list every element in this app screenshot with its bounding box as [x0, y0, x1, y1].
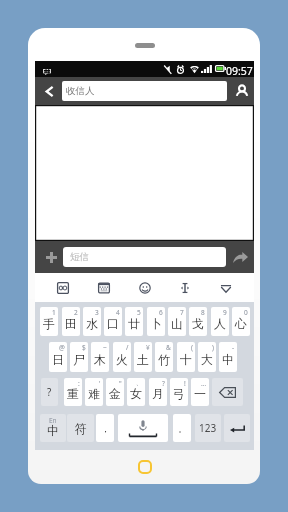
button[interactable]: :	[64, 378, 82, 406]
staticText: 8	[201, 308, 205, 317]
button[interactable]: @	[49, 342, 67, 372]
button[interactable]: …	[191, 378, 209, 406]
staticText: 2	[74, 308, 78, 317]
staticText: &	[166, 343, 171, 352]
button[interactable]: 6	[147, 307, 165, 336]
button[interactable]: 4	[104, 307, 122, 336]
staticText: 4	[116, 308, 120, 317]
button[interactable]: Keyboard layout	[90, 273, 118, 302]
staticText: 弓	[173, 386, 185, 401]
button[interactable]: 符	[67, 414, 94, 442]
button[interactable]: Send	[227, 241, 254, 273]
staticText: 水	[86, 316, 98, 331]
staticText: 收信人	[66, 85, 95, 97]
button[interactable]: -	[219, 342, 237, 372]
staticText: 重	[67, 386, 79, 401]
staticText: 卜	[150, 316, 162, 331]
staticText: 日	[52, 352, 64, 367]
staticText: 难	[88, 386, 100, 401]
button[interactable]: 0	[232, 307, 250, 336]
button[interactable]: En	[40, 414, 66, 442]
button[interactable]: 短信	[63, 247, 226, 267]
button[interactable]: ，	[96, 414, 114, 442]
button[interactable]: backspace	[212, 378, 243, 406]
staticText: 9	[223, 308, 227, 317]
staticText: 5	[137, 308, 141, 317]
staticText: 竹	[158, 352, 170, 367]
button[interactable]: Emoji	[131, 273, 159, 302]
button[interactable]: 1	[40, 307, 58, 336]
staticText: "	[119, 379, 122, 388]
staticText: 09:57	[226, 64, 253, 78]
staticText: ，	[101, 423, 110, 434]
staticText: 戈	[192, 316, 204, 331]
button[interactable]: 123	[195, 414, 221, 442]
button[interactable]: 。	[173, 414, 191, 442]
button[interactable]: Choose contact	[229, 77, 254, 105]
button[interactable]: )	[198, 342, 216, 372]
staticText: En	[49, 416, 57, 425]
button[interactable]: (	[177, 342, 195, 372]
button[interactable]: ?	[41, 378, 58, 406]
staticText: 十	[180, 352, 192, 367]
button[interactable]: 9	[211, 307, 229, 336]
staticText: ?	[47, 385, 52, 399]
staticText: 女	[130, 386, 142, 401]
staticText: 手	[43, 316, 55, 331]
staticText: 土	[137, 352, 149, 367]
button[interactable]: ?	[149, 378, 167, 406]
staticText: 中	[47, 423, 59, 438]
staticText: 123	[199, 421, 217, 435]
button[interactable]: Back	[37, 77, 61, 105]
staticText: 0	[244, 308, 248, 317]
button[interactable]: "	[106, 378, 124, 406]
staticText: @	[59, 343, 65, 352]
button[interactable]: 2	[62, 307, 80, 336]
button[interactable]: Language	[49, 273, 77, 302]
staticText: ¥	[146, 343, 150, 352]
button[interactable]: ~	[91, 342, 109, 372]
button[interactable]: Add attachment	[38, 241, 64, 273]
staticText: 廿	[128, 316, 140, 331]
button[interactable]: space	[118, 414, 168, 442]
button[interactable]: ¥	[134, 342, 152, 372]
staticText: 田	[65, 316, 77, 331]
staticText: 大	[201, 352, 213, 367]
staticText: 3	[95, 308, 99, 317]
button[interactable]: 3	[83, 307, 101, 336]
button[interactable]: !	[170, 378, 188, 406]
staticText: 尸	[73, 352, 85, 367]
staticText: ~	[103, 343, 107, 352]
staticText: ?	[162, 379, 165, 388]
staticText: -	[232, 343, 235, 352]
staticText: 人	[214, 316, 226, 331]
button[interactable]: Home	[138, 460, 152, 474]
staticText: …	[201, 379, 207, 388]
button[interactable]: /	[113, 342, 131, 372]
button[interactable]: '	[85, 378, 103, 406]
staticText: )	[212, 343, 214, 352]
button[interactable]: 、	[127, 378, 145, 406]
staticText: 金	[109, 386, 121, 401]
staticText: 符	[75, 421, 87, 436]
button[interactable]: Move cursor	[171, 273, 199, 302]
button[interactable]: $	[70, 342, 88, 372]
staticText: :	[78, 379, 80, 388]
button[interactable]: 5	[125, 307, 143, 336]
button[interactable]: Hide keyboard	[212, 273, 240, 302]
staticText: !	[184, 379, 186, 388]
button[interactable]: &	[155, 342, 173, 372]
staticText: 心	[235, 316, 247, 331]
staticText: $	[82, 343, 86, 352]
button[interactable]: 收信人	[62, 81, 227, 101]
button[interactable]: 7	[168, 307, 186, 336]
staticText: '	[99, 379, 101, 388]
staticText: 山	[171, 316, 183, 331]
staticText: 口	[107, 316, 119, 331]
staticText: 1	[52, 308, 56, 317]
button[interactable]: 8	[189, 307, 207, 336]
staticText: 火	[116, 352, 128, 367]
staticText: 木	[94, 352, 106, 367]
button[interactable]: enter	[224, 414, 250, 442]
staticText: 中	[222, 352, 234, 367]
